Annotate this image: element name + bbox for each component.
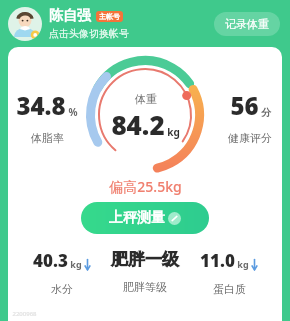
staticText: 点击头像切换帐号 [49,27,129,40]
staticText: 34.8 [16,89,66,122]
staticText: 肥胖等级 [123,280,167,294]
staticText: 上秤测量 [109,209,165,227]
staticText: 84.2 [111,107,165,142]
staticText: % [68,105,78,119]
staticText: 健康评分 [228,131,272,145]
staticText: 2200968 [12,310,37,318]
button[interactable]: 记录体重 [214,12,280,36]
staticText: 蛋白质 [213,282,246,296]
button[interactable]: 56 [228,89,272,145]
staticText: 记录体重 [225,17,269,31]
staticText: 分 [261,106,271,119]
staticText: 40.3 [33,249,68,272]
staticText: 偏高25.5kg [109,177,182,196]
staticText: 水分 [51,282,73,296]
staticText: 陈自强 [49,7,91,25]
staticText: 体重 [135,92,157,106]
button[interactable]: 11.0 [200,249,258,296]
button[interactable]: 40.3 [33,249,91,296]
staticText: 肥胖一级 [111,249,179,270]
staticText: 体脂率 [31,131,64,145]
staticText: kg [237,258,249,270]
staticText: 主帐号 [99,12,120,21]
staticText: 11.0 [200,249,235,272]
staticText: kg [70,258,82,270]
button[interactable]: 肥胖一级 [111,249,179,294]
staticText: kg [167,125,180,139]
button[interactable]: 上秤测量 [81,202,209,234]
button[interactable]: Switch account avatar [8,7,42,41]
button[interactable]: 34.8 [16,89,78,145]
staticText: 56 [230,89,259,122]
